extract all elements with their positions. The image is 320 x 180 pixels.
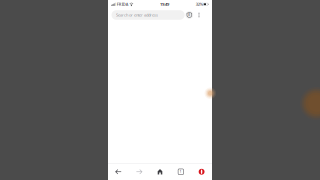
button[interactable]: Opera menu	[191, 164, 212, 180]
button[interactable]: Home	[150, 164, 170, 180]
staticText: Search or enter address	[116, 12, 158, 18]
button[interactable]: Forward	[129, 164, 150, 180]
button[interactable]: Back	[108, 164, 129, 180]
button[interactable]: Tracker blocker	[185, 10, 194, 20]
staticText: FRIDA	[117, 2, 129, 7]
staticText: 19:49	[160, 2, 169, 7]
staticText: 0	[188, 13, 190, 17]
staticText: 32%	[196, 2, 203, 7]
staticText: 1	[180, 170, 182, 173]
button[interactable]: Tabs	[170, 164, 191, 180]
button[interactable]: Search or enter address	[111, 10, 185, 20]
button[interactable]: More options	[195, 10, 202, 20]
